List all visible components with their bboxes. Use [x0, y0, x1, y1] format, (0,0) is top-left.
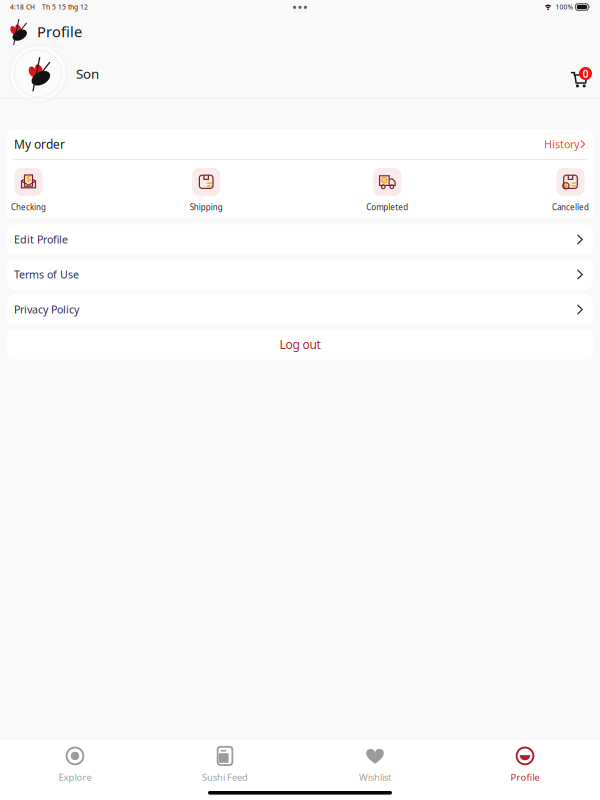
staticText: Checking — [11, 202, 46, 212]
staticText: Sushi Feed — [202, 771, 248, 783]
button[interactable]: Sushi Feed — [150, 746, 300, 783]
staticText: Cancelled — [552, 202, 589, 212]
staticText: Th 5 15 thg 12 — [42, 3, 88, 11]
staticText: Shipping — [190, 202, 223, 212]
button[interactable]: Terms of Use — [7, 259, 593, 289]
button[interactable]: Profile — [450, 746, 600, 783]
staticText: Terms of Use — [14, 267, 79, 281]
staticText: Profile — [510, 771, 539, 783]
staticText: Son — [76, 65, 99, 82]
button[interactable]: $ — [11, 168, 46, 212]
button[interactable]: Explore — [0, 746, 150, 783]
staticText: Wishlist — [359, 771, 391, 783]
staticText: Profile — [37, 22, 82, 41]
staticText: Completed — [366, 202, 408, 212]
staticText: Privacy Policy — [14, 302, 79, 316]
button[interactable]: Wishlist — [300, 746, 450, 783]
staticText: 4:18 CH — [10, 3, 35, 11]
staticText: $ — [26, 173, 31, 185]
staticText: Log out — [279, 336, 320, 352]
staticText: 100% — [555, 3, 573, 11]
button[interactable]: Privacy Policy — [7, 294, 593, 324]
staticText: My order — [14, 136, 65, 152]
button[interactable]: Edit Profile — [7, 224, 593, 254]
staticText: 0 — [582, 66, 588, 81]
button[interactable]: Log out — [7, 329, 593, 359]
staticText: Explore — [58, 771, 91, 783]
button[interactable]: History — [544, 137, 586, 151]
staticText: History — [544, 137, 579, 151]
staticText: Edit Profile — [14, 232, 68, 246]
button[interactable]: Shipping — [190, 168, 223, 212]
button[interactable]: Completed — [366, 168, 408, 212]
button[interactable]: Cancelled — [552, 168, 589, 212]
